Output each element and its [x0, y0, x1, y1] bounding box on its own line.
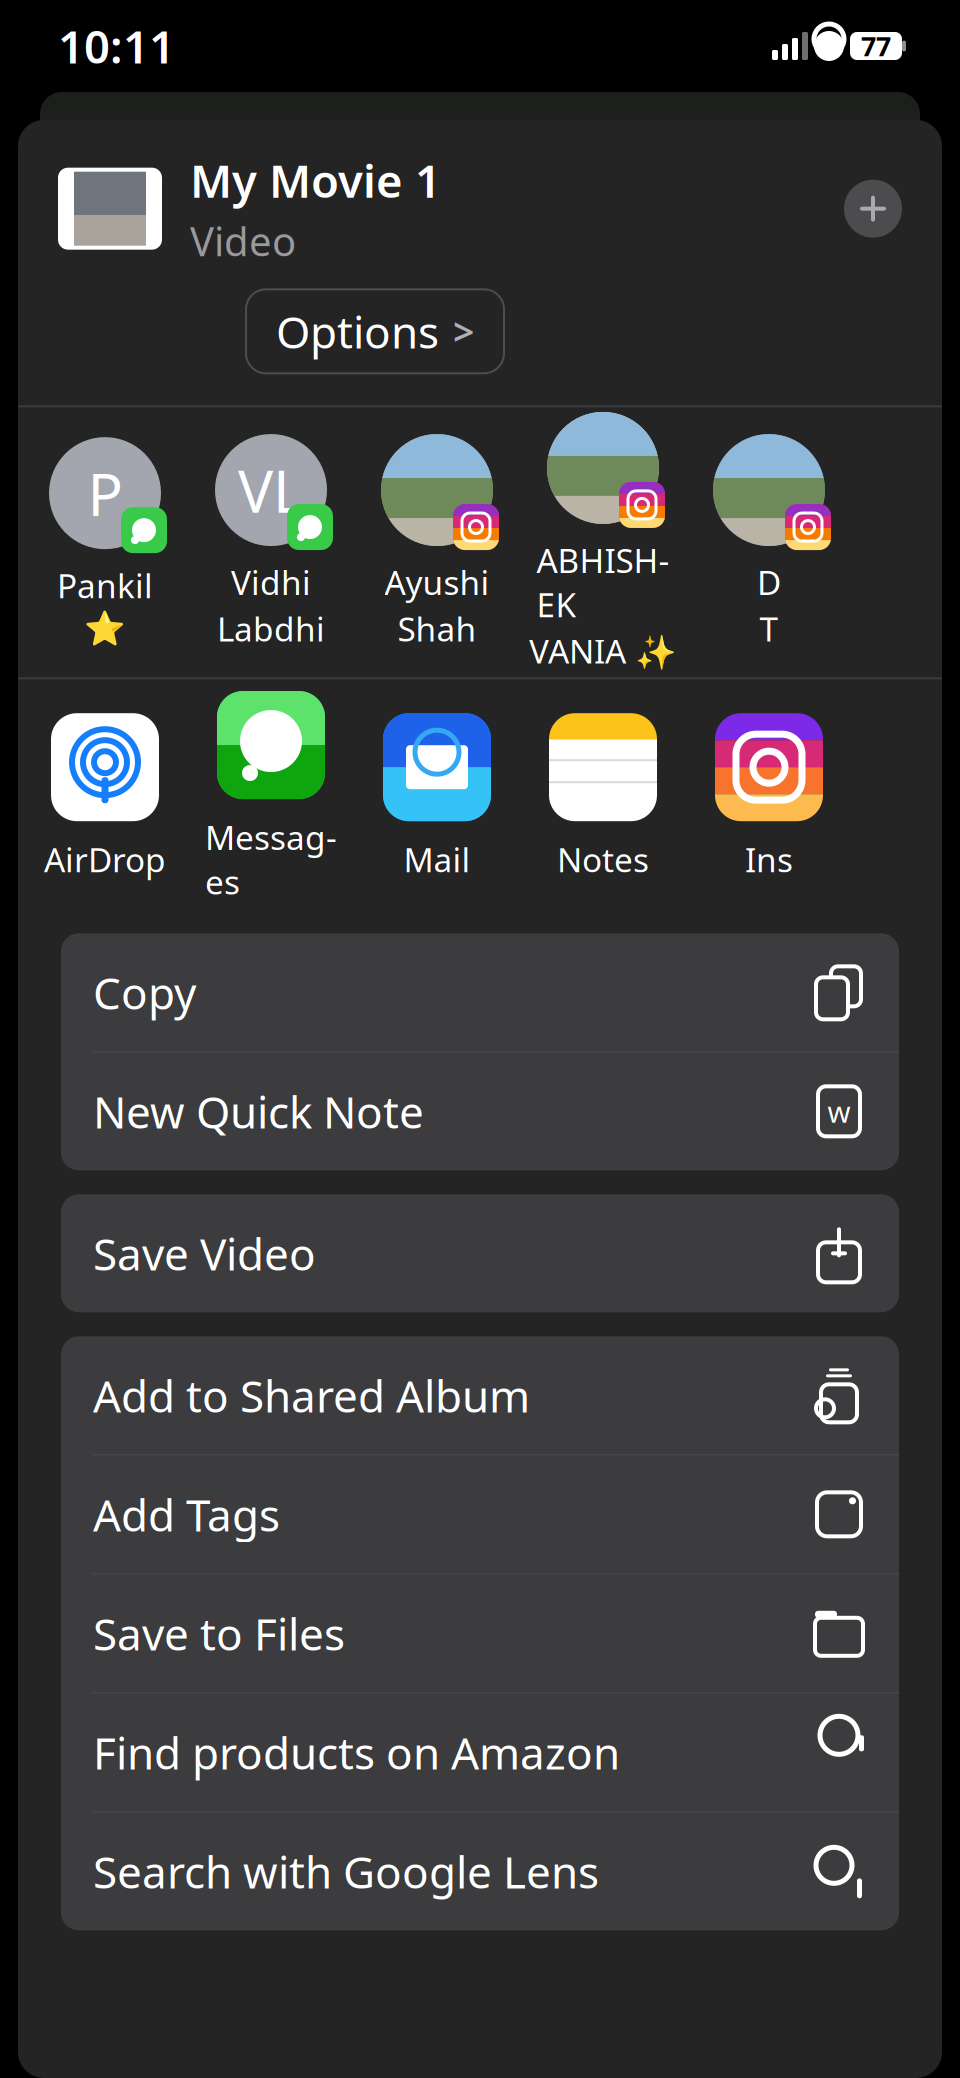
button[interactable]: Messages	[196, 691, 346, 904]
staticText: Options	[276, 302, 439, 360]
staticText: 77	[861, 28, 891, 64]
staticText: Add Tags	[93, 1485, 280, 1543]
button[interactable]: Search with Google Lens	[61, 1812, 899, 1930]
staticText: Search with Google Lens	[93, 1842, 599, 1900]
staticText: T	[759, 606, 778, 651]
staticText: Video	[190, 214, 296, 267]
staticText: Notes	[557, 837, 649, 881]
staticText: Vidhi	[231, 560, 311, 604]
button[interactable]: Add Tags	[61, 1455, 899, 1573]
staticText: Pankil	[57, 563, 153, 607]
button[interactable]: Options	[246, 289, 504, 373]
staticText: Copy	[93, 963, 196, 1021]
staticText: ABHISHEK	[536, 538, 669, 626]
staticText: My Movie 1	[190, 150, 441, 210]
staticText: VL	[238, 451, 304, 529]
button[interactable]: Find products on Amazon	[61, 1693, 899, 1811]
staticText: P	[87, 454, 122, 532]
button[interactable]: Ayushi	[362, 434, 512, 651]
button[interactable]: P	[30, 437, 180, 647]
staticText: Save to Files	[93, 1604, 345, 1662]
button[interactable]: Add to Shared Album	[61, 1336, 899, 1454]
button[interactable]: VL	[196, 434, 346, 651]
staticText: VANIA ✨	[529, 628, 677, 673]
button[interactable]: ABHISHEK	[528, 412, 678, 673]
staticText: Ayushi	[384, 560, 489, 604]
button[interactable]: AirDrop	[30, 713, 180, 881]
staticText: Labdhi	[217, 606, 325, 651]
staticText: Messages	[205, 815, 337, 904]
staticText: ⭐️	[84, 609, 126, 647]
staticText: D	[757, 560, 781, 604]
staticText: >	[453, 306, 474, 356]
staticText: Shah	[397, 606, 476, 651]
button[interactable]: Save to Files	[61, 1574, 899, 1692]
button[interactable]: Close	[844, 180, 902, 238]
button[interactable]: Ins	[694, 713, 844, 881]
staticText: Find products on Amazon	[93, 1723, 620, 1781]
button[interactable]: Mail	[362, 713, 512, 881]
button[interactable]: Notes	[528, 713, 678, 881]
staticText: Mail	[403, 837, 470, 881]
staticText: Add to Shared Album	[93, 1366, 530, 1424]
button[interactable]: Save Video	[61, 1194, 899, 1312]
staticText: Ins	[745, 837, 793, 881]
button[interactable]: D	[694, 434, 844, 651]
staticText: Save Video	[93, 1224, 316, 1282]
button[interactable]: Copy	[61, 933, 899, 1051]
button[interactable]: New Quick Note	[61, 1052, 899, 1170]
staticText: w	[827, 1092, 850, 1131]
staticText: 10:11	[58, 16, 175, 76]
staticText: AirDrop	[44, 837, 166, 881]
staticText: New Quick Note	[93, 1082, 424, 1140]
